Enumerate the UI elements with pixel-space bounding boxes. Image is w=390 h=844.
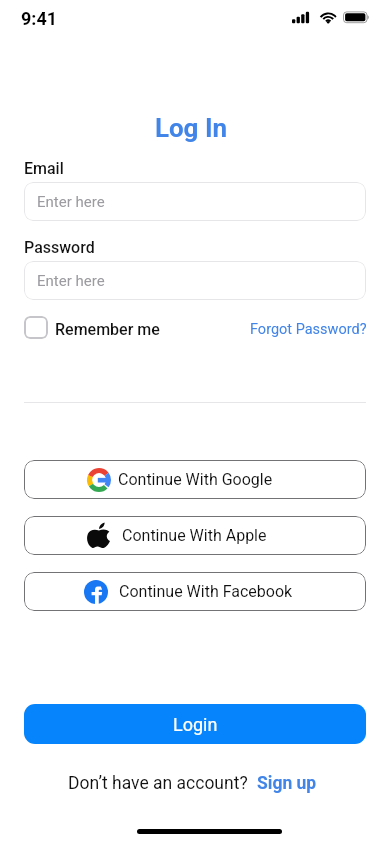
staticText: Continue With Google <box>118 470 273 489</box>
staticText: Password <box>24 238 95 257</box>
staticText: Email <box>24 159 64 178</box>
button[interactable]: Remember me <box>24 316 160 339</box>
button[interactable]: Sign up <box>257 773 317 794</box>
staticText: Continue With Facebook <box>119 582 293 601</box>
button[interactable]: Enter here <box>24 261 366 300</box>
button[interactable]: Forgot Password? <box>250 321 367 338</box>
staticText: Log In <box>0 113 386 143</box>
staticText: Enter here <box>37 193 105 211</box>
staticText: Don’t have an account? <box>68 773 248 794</box>
staticText: Remember me <box>55 320 160 339</box>
button[interactable]: Enter here <box>24 182 366 221</box>
button[interactable]: Continue With Facebook <box>24 572 366 611</box>
button[interactable]: Login <box>24 704 366 744</box>
staticText: Enter here <box>37 272 105 290</box>
staticText: 9:41 <box>21 8 58 29</box>
staticText: Login <box>173 714 218 735</box>
staticText: Continue With Apple <box>122 526 267 545</box>
button[interactable]: Continue With Apple <box>24 516 366 555</box>
button[interactable]: Continue With Google <box>24 460 366 499</box>
